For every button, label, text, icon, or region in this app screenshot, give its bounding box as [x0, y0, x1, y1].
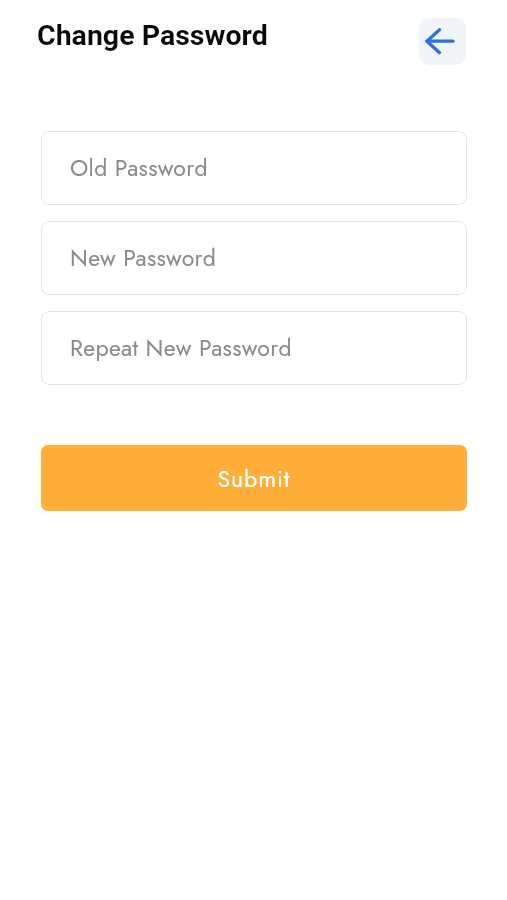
button[interactable]: Back: [419, 18, 466, 65]
staticText: Repeat New Password: [70, 331, 292, 364]
button[interactable]: Old Password: [41, 131, 467, 205]
staticText: Submit: [217, 462, 291, 495]
button[interactable]: New Password: [41, 221, 467, 295]
staticText: New Password: [70, 241, 217, 274]
button[interactable]: Submit: [41, 445, 467, 511]
button[interactable]: Repeat New Password: [41, 311, 467, 385]
staticText: Change Password: [37, 19, 268, 52]
staticText: Old Password: [70, 151, 208, 184]
